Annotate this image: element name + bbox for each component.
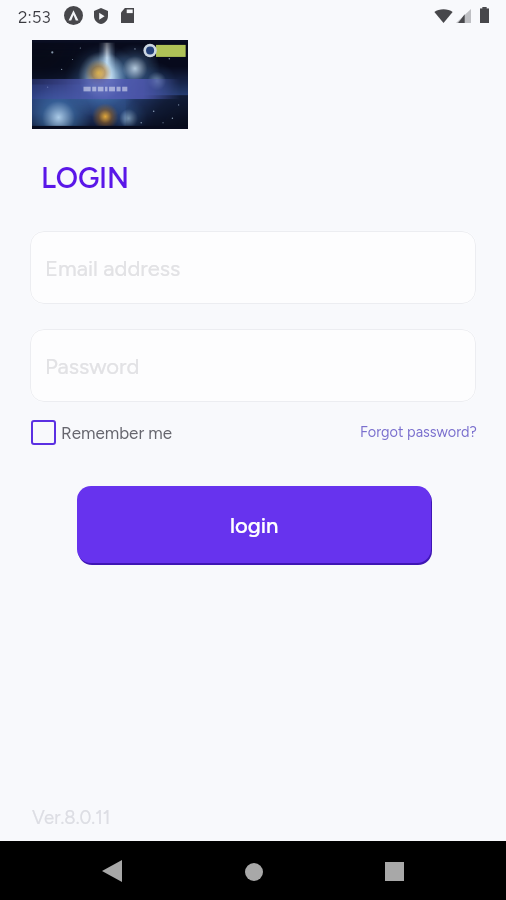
button[interactable]: Recent apps xyxy=(365,841,423,900)
staticText: Remember me xyxy=(61,423,173,443)
staticText: login xyxy=(230,512,279,538)
button[interactable]: Back xyxy=(84,841,142,900)
button[interactable]: Remember me xyxy=(31,420,173,445)
staticText: Ver.8.0.11 xyxy=(32,806,111,828)
staticText: Email address xyxy=(45,255,181,281)
button[interactable]: Email address xyxy=(30,231,476,304)
button[interactable]: login xyxy=(77,486,431,563)
button[interactable]: Password xyxy=(30,329,476,402)
staticText: LOGIN xyxy=(41,161,130,195)
staticText: Password xyxy=(45,353,140,379)
staticText: 2:53 xyxy=(18,7,51,27)
staticText: Forgot password? xyxy=(360,423,477,440)
button[interactable]: Home xyxy=(225,841,283,900)
button[interactable]: Forgot password? xyxy=(360,419,477,444)
